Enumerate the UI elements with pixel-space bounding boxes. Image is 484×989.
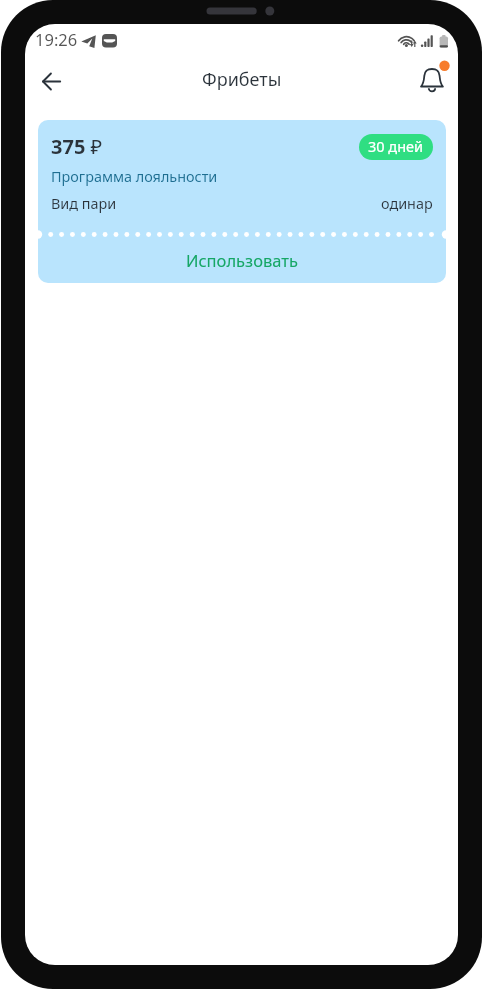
staticText: Фрибеты <box>202 67 282 92</box>
staticText: Вид пари <box>51 194 117 214</box>
button[interactable]: Back <box>28 58 74 104</box>
staticText: Программа лояльности <box>51 167 218 187</box>
staticText: 375 ₽ <box>51 133 103 160</box>
button[interactable]: Использовать <box>38 239 446 283</box>
staticText: одинар <box>381 194 433 214</box>
button[interactable]: Notifications <box>411 60 453 102</box>
staticText: 30 дней <box>368 136 424 156</box>
staticText: Использовать <box>186 249 298 271</box>
staticText: 19:26 <box>35 28 78 50</box>
